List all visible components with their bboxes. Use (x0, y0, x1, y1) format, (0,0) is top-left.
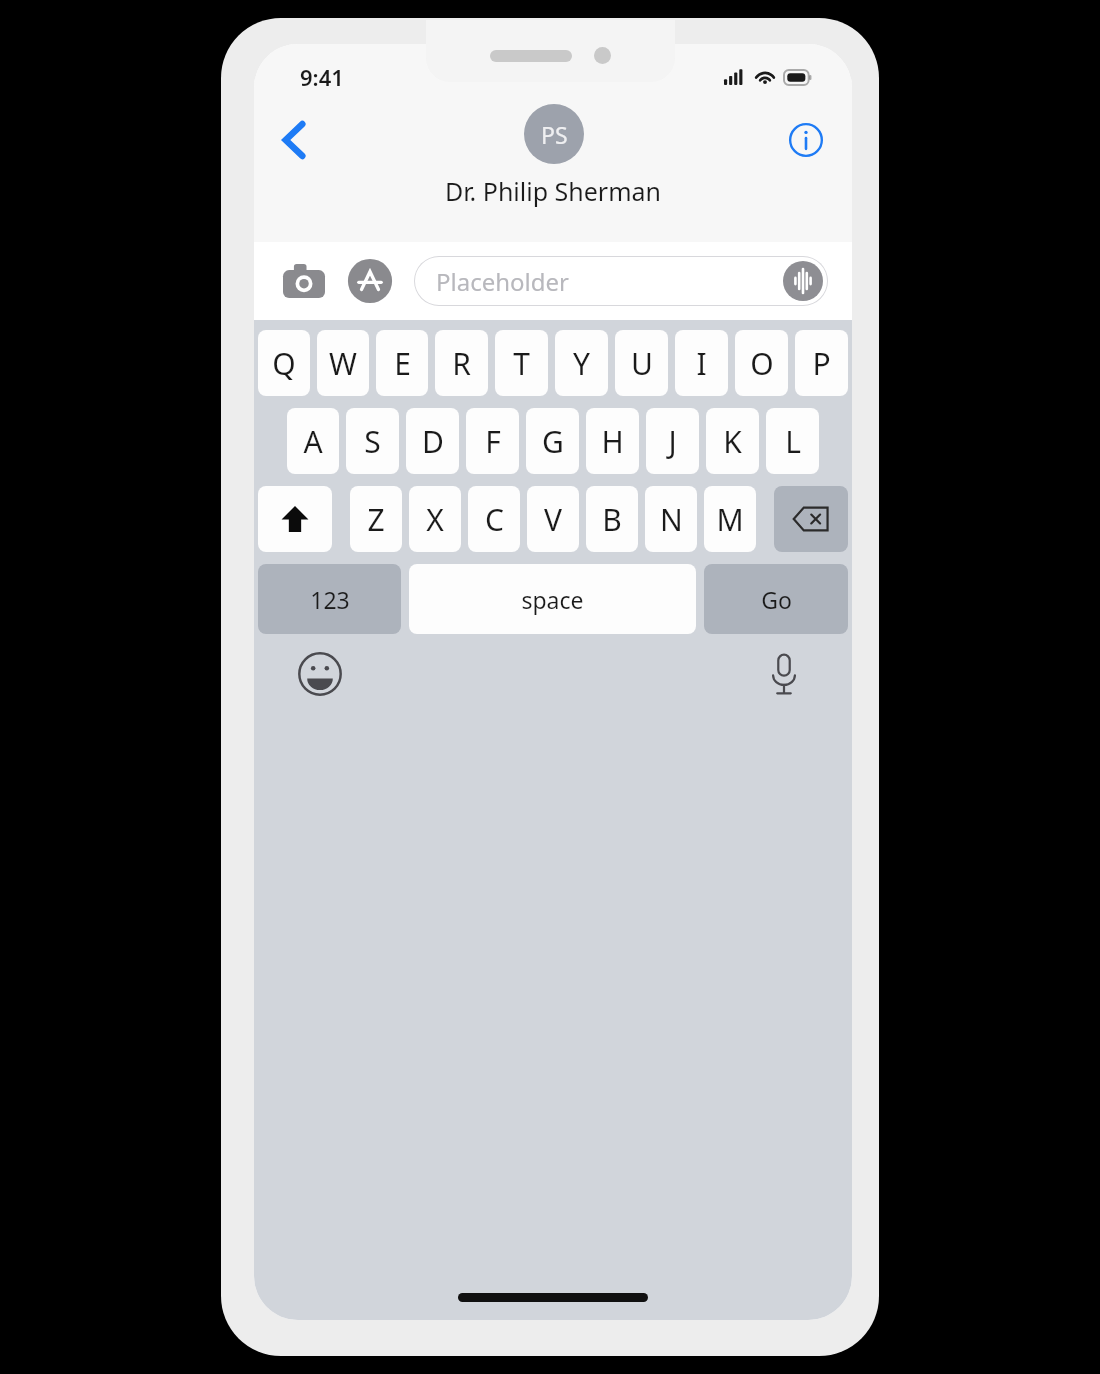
button[interactable]: Details (780, 114, 832, 166)
staticText: A (303, 421, 323, 462)
staticText: PS (541, 119, 568, 150)
staticText: X (426, 499, 444, 540)
button[interactable]: G (526, 408, 579, 474)
button[interactable]: V (527, 486, 579, 552)
button[interactable]: W (317, 330, 369, 396)
button[interactable]: Placeholder (414, 256, 828, 306)
staticText: E (394, 343, 411, 384)
button[interactable]: B (586, 486, 638, 552)
button[interactable]: J (646, 408, 699, 474)
button[interactable]: X (409, 486, 461, 552)
button[interactable]: D (406, 408, 459, 474)
button[interactable]: L (766, 408, 819, 474)
button[interactable]: H (586, 408, 639, 474)
button[interactable]: Audio message (783, 261, 823, 301)
button[interactable]: E (376, 330, 428, 396)
staticText: V (544, 499, 562, 540)
button[interactable]: A (287, 408, 339, 474)
staticText: Placeholder (436, 265, 569, 298)
staticText: W (329, 343, 357, 384)
staticText: 9:41 (300, 62, 344, 92)
staticText: U (631, 343, 653, 384)
button[interactable]: S (346, 408, 399, 474)
staticText: Q (272, 343, 296, 384)
staticText: T (513, 343, 530, 384)
button[interactable]: M (704, 486, 756, 552)
button[interactable]: PS (445, 104, 662, 208)
staticText: O (750, 343, 774, 384)
staticText: R (452, 343, 471, 384)
button[interactable]: 123 (258, 564, 401, 634)
staticText: Dr. Philip Sherman (445, 174, 662, 208)
staticText: F (485, 421, 501, 462)
staticText: C (485, 499, 504, 540)
button[interactable]: Q (258, 330, 310, 396)
staticText: 123 (310, 584, 350, 615)
button[interactable]: R (435, 330, 488, 396)
staticText: I (696, 343, 707, 384)
button[interactable]: C (468, 486, 520, 552)
staticText: B (602, 499, 622, 540)
button[interactable]: Apps (344, 255, 396, 307)
button[interactable]: K (706, 408, 759, 474)
button[interactable]: O (735, 330, 788, 396)
button[interactable]: Camera (278, 255, 330, 307)
staticText: space (521, 584, 584, 615)
staticText: Go (761, 584, 792, 615)
staticText: K (723, 421, 742, 462)
button[interactable]: Shift (258, 486, 332, 552)
staticText: N (660, 499, 683, 540)
button[interactable]: Z (350, 486, 402, 552)
staticText: P (812, 343, 831, 384)
staticText: J (668, 421, 677, 462)
staticText: M (716, 499, 744, 540)
button[interactable]: Dictation (760, 650, 808, 698)
button[interactable]: T (495, 330, 548, 396)
staticText: S (364, 421, 381, 462)
button[interactable]: Go (704, 564, 848, 634)
staticText: D (422, 421, 444, 462)
button[interactable]: Back (266, 112, 322, 168)
staticText: G (542, 421, 564, 462)
button[interactable]: I (675, 330, 728, 396)
button[interactable]: P (795, 330, 848, 396)
button[interactable]: Emoji (296, 650, 344, 698)
button[interactable]: F (466, 408, 519, 474)
staticText: H (601, 421, 624, 462)
button[interactable]: space (409, 564, 696, 634)
staticText: Y (573, 343, 590, 384)
button[interactable]: U (615, 330, 668, 396)
button[interactable]: N (645, 486, 697, 552)
button[interactable]: Y (555, 330, 608, 396)
staticText: L (785, 421, 801, 462)
staticText: Z (367, 499, 385, 540)
button[interactable]: Backspace (774, 486, 848, 552)
